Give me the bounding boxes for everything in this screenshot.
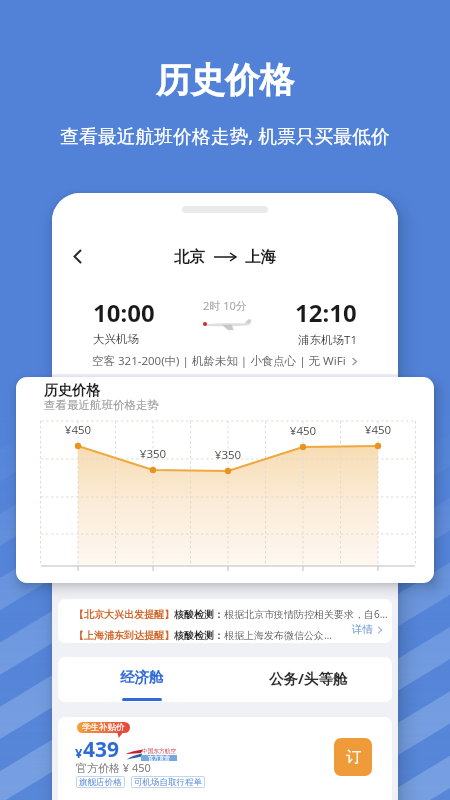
staticText: 北京 — [174, 247, 205, 267]
staticText: 12:10 — [295, 296, 357, 329]
button[interactable]: Back — [60, 239, 94, 273]
staticText: 可机场自取行程单 — [134, 777, 202, 788]
staticText: 大兴机场 — [93, 332, 139, 346]
button[interactable]: 订 — [334, 738, 372, 776]
button[interactable]: 公务/头等舱 — [225, 657, 392, 702]
staticText: 官方直营 — [148, 755, 170, 761]
staticText: 中国东方航空 — [141, 747, 177, 754]
staticText: 上海 — [245, 247, 276, 267]
staticText: 2时 10分 — [203, 298, 247, 313]
staticText: 官方价格 ¥ 450 — [76, 760, 151, 775]
button[interactable]: 【北京大兴出发提醒】 — [58, 599, 392, 643]
staticText: ¥350 — [133, 446, 173, 462]
staticText: 历史价格 — [44, 382, 100, 400]
staticText: 浦东机场T1 — [298, 332, 357, 348]
button[interactable]: 详情 — [352, 623, 384, 636]
staticText: 学生补贴价 — [82, 722, 125, 733]
staticText: 根据上海发布微信公众… — [224, 628, 332, 642]
staticText: 【上海浦东到达提醒】 — [74, 629, 174, 642]
staticText: 核酸检测： — [174, 608, 224, 621]
staticText: 核酸检测： — [174, 629, 224, 642]
staticText: 【北京大兴出发提醒】 — [74, 608, 174, 621]
staticText: 空客 321-200(中) | 机龄未知 | 小食点心 | 无 WiFi — [92, 353, 346, 369]
staticText: ¥ — [75, 744, 83, 762]
staticText: 旗舰店价格 — [79, 777, 122, 788]
staticText: 经济舱 — [120, 668, 164, 686]
staticText: 根据北京市疫情防控相关要求，自6… — [224, 607, 388, 621]
staticText: 详情 — [352, 623, 373, 636]
staticText: ¥450 — [283, 423, 323, 439]
staticText: 查看最近航班价格走势 — [44, 398, 159, 412]
staticText: 历史价格 — [0, 59, 450, 102]
staticText: ¥350 — [208, 447, 248, 463]
staticText: ¥450 — [58, 422, 98, 438]
staticText: ¥450 — [358, 422, 398, 438]
staticText: 10:00 — [93, 296, 155, 329]
button[interactable]: 经济舱 — [58, 657, 225, 702]
staticText: 439 — [83, 735, 120, 764]
staticText: 订 — [346, 748, 361, 767]
staticText: 公务/头等舱 — [269, 668, 348, 688]
staticText: 查看最近航班价格走势, 机票只买最低价 — [0, 123, 450, 149]
button[interactable]: 空客 321-200(中) | 机龄未知 | 小食点心 | 无 WiFi — [92, 353, 359, 369]
